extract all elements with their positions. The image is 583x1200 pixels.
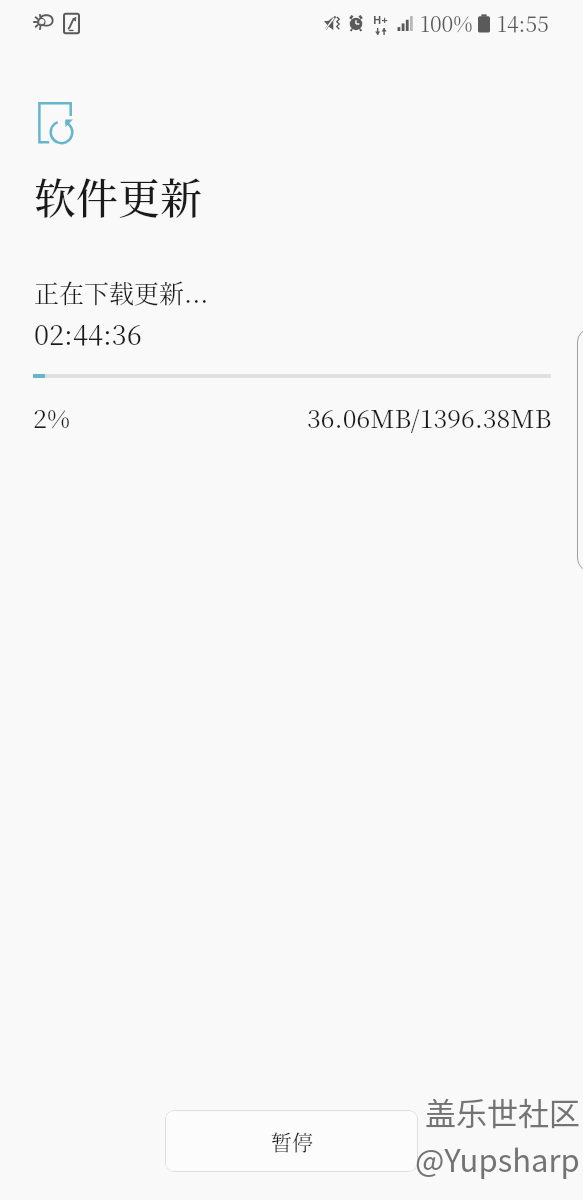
staticText: @Yupsharp [415,1136,580,1181]
staticText: 2% [33,399,71,435]
staticText: 盖乐世社区 [425,1089,580,1134]
staticText: 暂停 [271,1126,313,1156]
staticText: 02:44:36 [34,314,142,353]
staticText: 36.06MB/1396.38MB [307,399,552,435]
staticText: 14:55 [497,8,549,38]
other: Smart view [63,13,80,34]
staticText: 100% [420,8,473,38]
staticText: H+ [373,12,388,27]
other: Software update [36,100,80,147]
staticText: 正在下载更新... [34,274,209,310]
other: Sound off, vibrate [324,16,340,31]
button[interactable]: 暂停 [165,1110,418,1172]
staticText: 软件更新 [34,166,203,226]
other: Weather [32,14,54,34]
other: Alarm set [348,15,364,31]
